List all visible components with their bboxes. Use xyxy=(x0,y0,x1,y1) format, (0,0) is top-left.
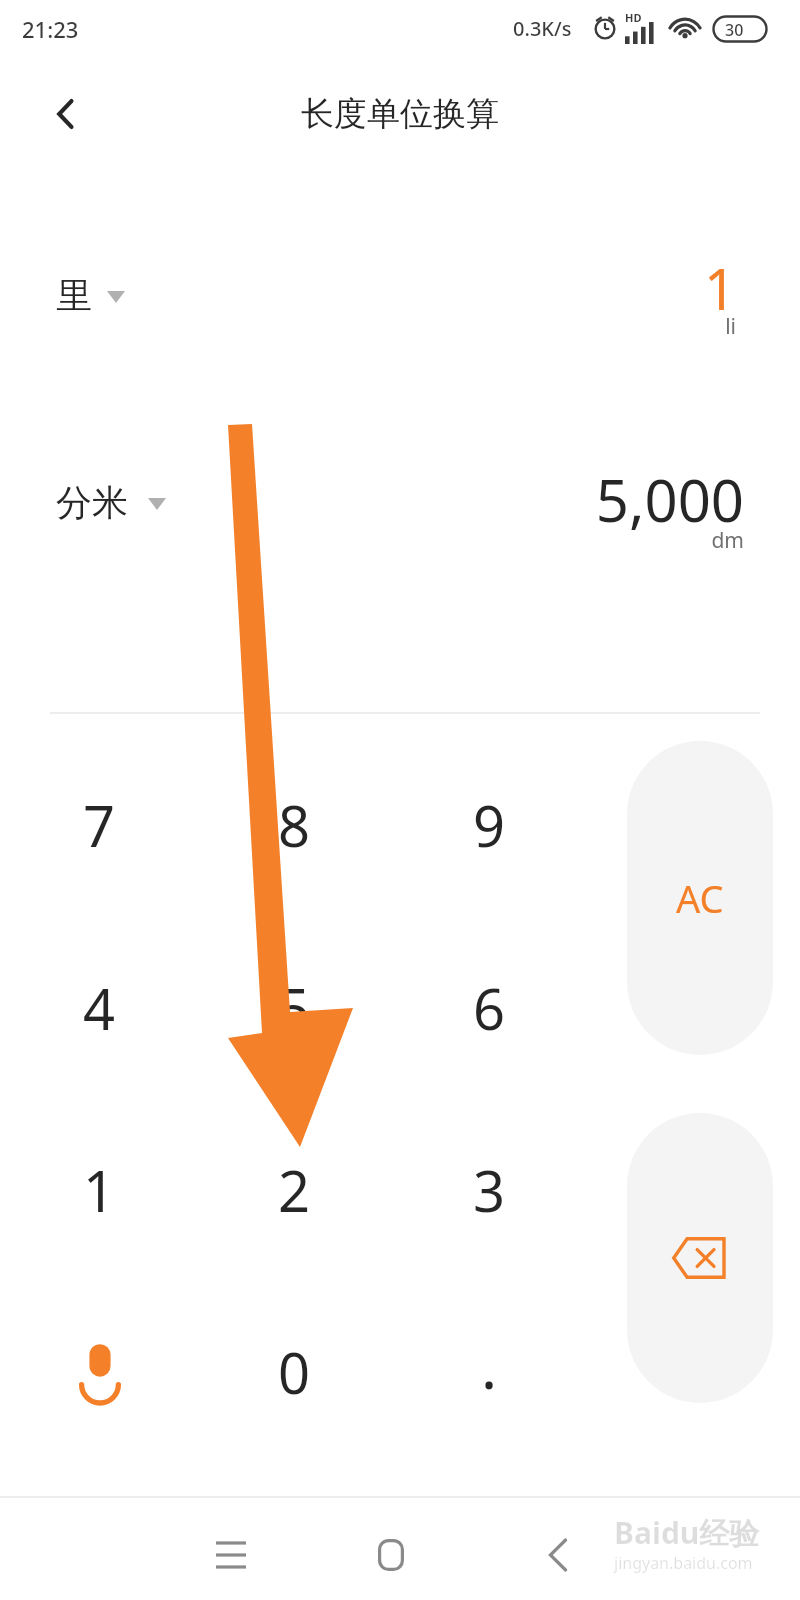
staticText: 6 xyxy=(473,970,506,1046)
staticText: 1 xyxy=(0,250,736,326)
staticText: 5,000 xyxy=(0,460,744,539)
staticText: 21:23 xyxy=(22,14,79,44)
button[interactable]: 5 xyxy=(197,918,392,1098)
staticText: 0.3K/s xyxy=(513,15,572,42)
button[interactable]: AC xyxy=(627,741,773,1055)
button[interactable]: 分米 xyxy=(0,450,800,582)
button[interactable]: 4 xyxy=(2,918,197,1098)
staticText: HD xyxy=(625,10,642,25)
staticText: 0 xyxy=(278,1334,311,1410)
staticText: 9 xyxy=(473,787,506,863)
staticText: 长度单位换算 xyxy=(0,93,800,135)
staticText: li xyxy=(0,312,736,341)
staticText: 30 xyxy=(725,19,744,41)
button[interactable]: 1 xyxy=(2,1100,197,1280)
button[interactable]: 里 xyxy=(0,236,800,368)
button[interactable]: 3 xyxy=(392,1100,587,1280)
staticText: Baidu经验 xyxy=(614,1512,760,1553)
button[interactable]: Back xyxy=(30,78,102,150)
button[interactable]: 9 xyxy=(392,735,587,915)
staticText: . xyxy=(481,1325,498,1407)
staticText: AC xyxy=(676,872,724,924)
staticText: 2 xyxy=(278,1152,311,1228)
staticText: dm xyxy=(0,526,744,555)
button[interactable]: 8 xyxy=(197,735,392,915)
staticText: 5 xyxy=(278,970,311,1046)
staticText: 8 xyxy=(278,787,311,863)
button[interactable]: Home xyxy=(355,1519,427,1591)
button[interactable]: Menu xyxy=(195,1519,267,1591)
staticText: 4 xyxy=(83,970,116,1046)
button[interactable]: 7 xyxy=(2,735,197,915)
button[interactable]: 0 xyxy=(197,1282,392,1462)
staticText: 7 xyxy=(83,787,116,863)
staticText: jingyan.baidu.com xyxy=(614,1552,753,1574)
button[interactable]: Back xyxy=(522,1519,594,1591)
button[interactable]: 6 xyxy=(392,918,587,1098)
button[interactable]: Voice input xyxy=(2,1282,197,1462)
button[interactable]: 2 xyxy=(197,1100,392,1280)
staticText: 里 xyxy=(56,273,92,318)
staticText: 1 xyxy=(83,1152,116,1228)
staticText: 分米 xyxy=(56,480,128,525)
button[interactable]: Backspace xyxy=(627,1113,773,1403)
button[interactable]: . xyxy=(392,1282,587,1462)
staticText: 3 xyxy=(473,1152,506,1228)
